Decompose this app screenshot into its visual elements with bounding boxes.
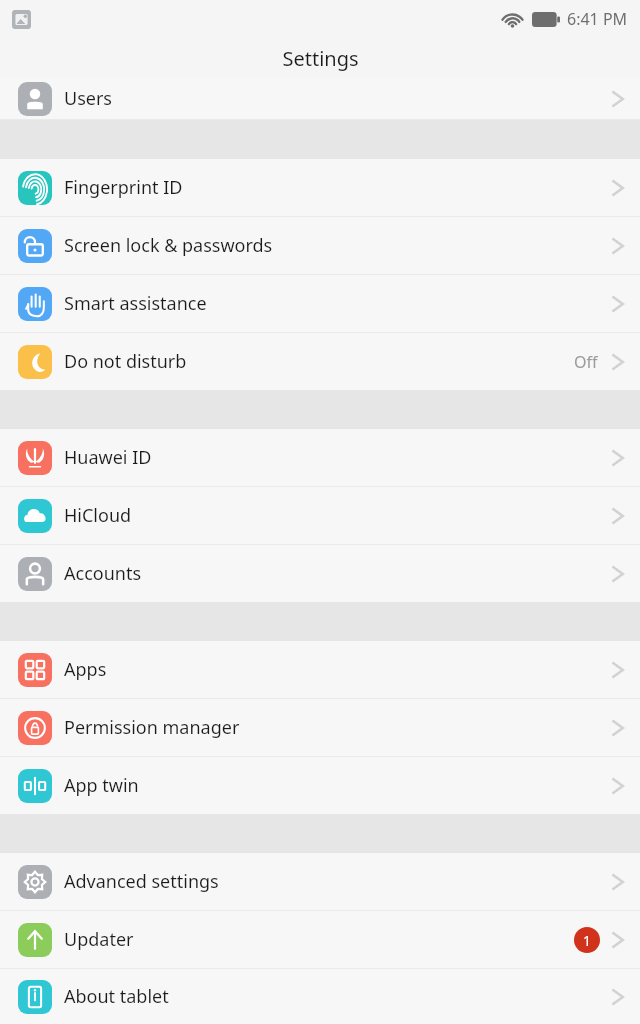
staticText: Fingerprint ID	[64, 175, 183, 200]
staticText: Huawei ID	[64, 445, 152, 470]
button[interactable]: Accounts	[0, 545, 640, 602]
button[interactable]: HiCloud	[0, 487, 640, 544]
button[interactable]: Do not disturb	[0, 333, 640, 390]
staticText: Settings	[282, 45, 359, 72]
staticText: Accounts	[64, 561, 142, 586]
staticText: Do not disturb	[64, 349, 187, 374]
staticText: App twin	[64, 773, 139, 798]
staticText: Apps	[64, 657, 107, 682]
staticText: About tablet	[64, 984, 169, 1009]
staticText: Smart assistance	[64, 291, 207, 316]
button[interactable]: Advanced settings	[0, 853, 640, 910]
staticText: HiCloud	[64, 503, 132, 528]
staticText: Advanced settings	[64, 869, 219, 894]
button[interactable]: Permission manager	[0, 699, 640, 756]
staticText: Screen lock & passwords	[64, 233, 273, 258]
button[interactable]: Fingerprint ID	[0, 159, 640, 216]
button[interactable]: Smart assistance	[0, 275, 640, 332]
staticText: Users	[64, 86, 112, 111]
button[interactable]: Users	[0, 78, 640, 119]
button[interactable]: About tablet	[0, 969, 640, 1024]
button[interactable]: Updater	[0, 911, 640, 968]
button[interactable]: Screen lock & passwords	[0, 217, 640, 274]
button[interactable]: Apps	[0, 641, 640, 698]
staticText: 6:41 PM	[567, 8, 628, 30]
staticText: Off	[574, 351, 598, 373]
staticText: Permission manager	[64, 715, 240, 740]
button[interactable]: App twin	[0, 757, 640, 814]
button[interactable]: Huawei ID	[0, 429, 640, 486]
staticText: Updater	[64, 927, 134, 952]
staticText: 1	[583, 931, 592, 950]
